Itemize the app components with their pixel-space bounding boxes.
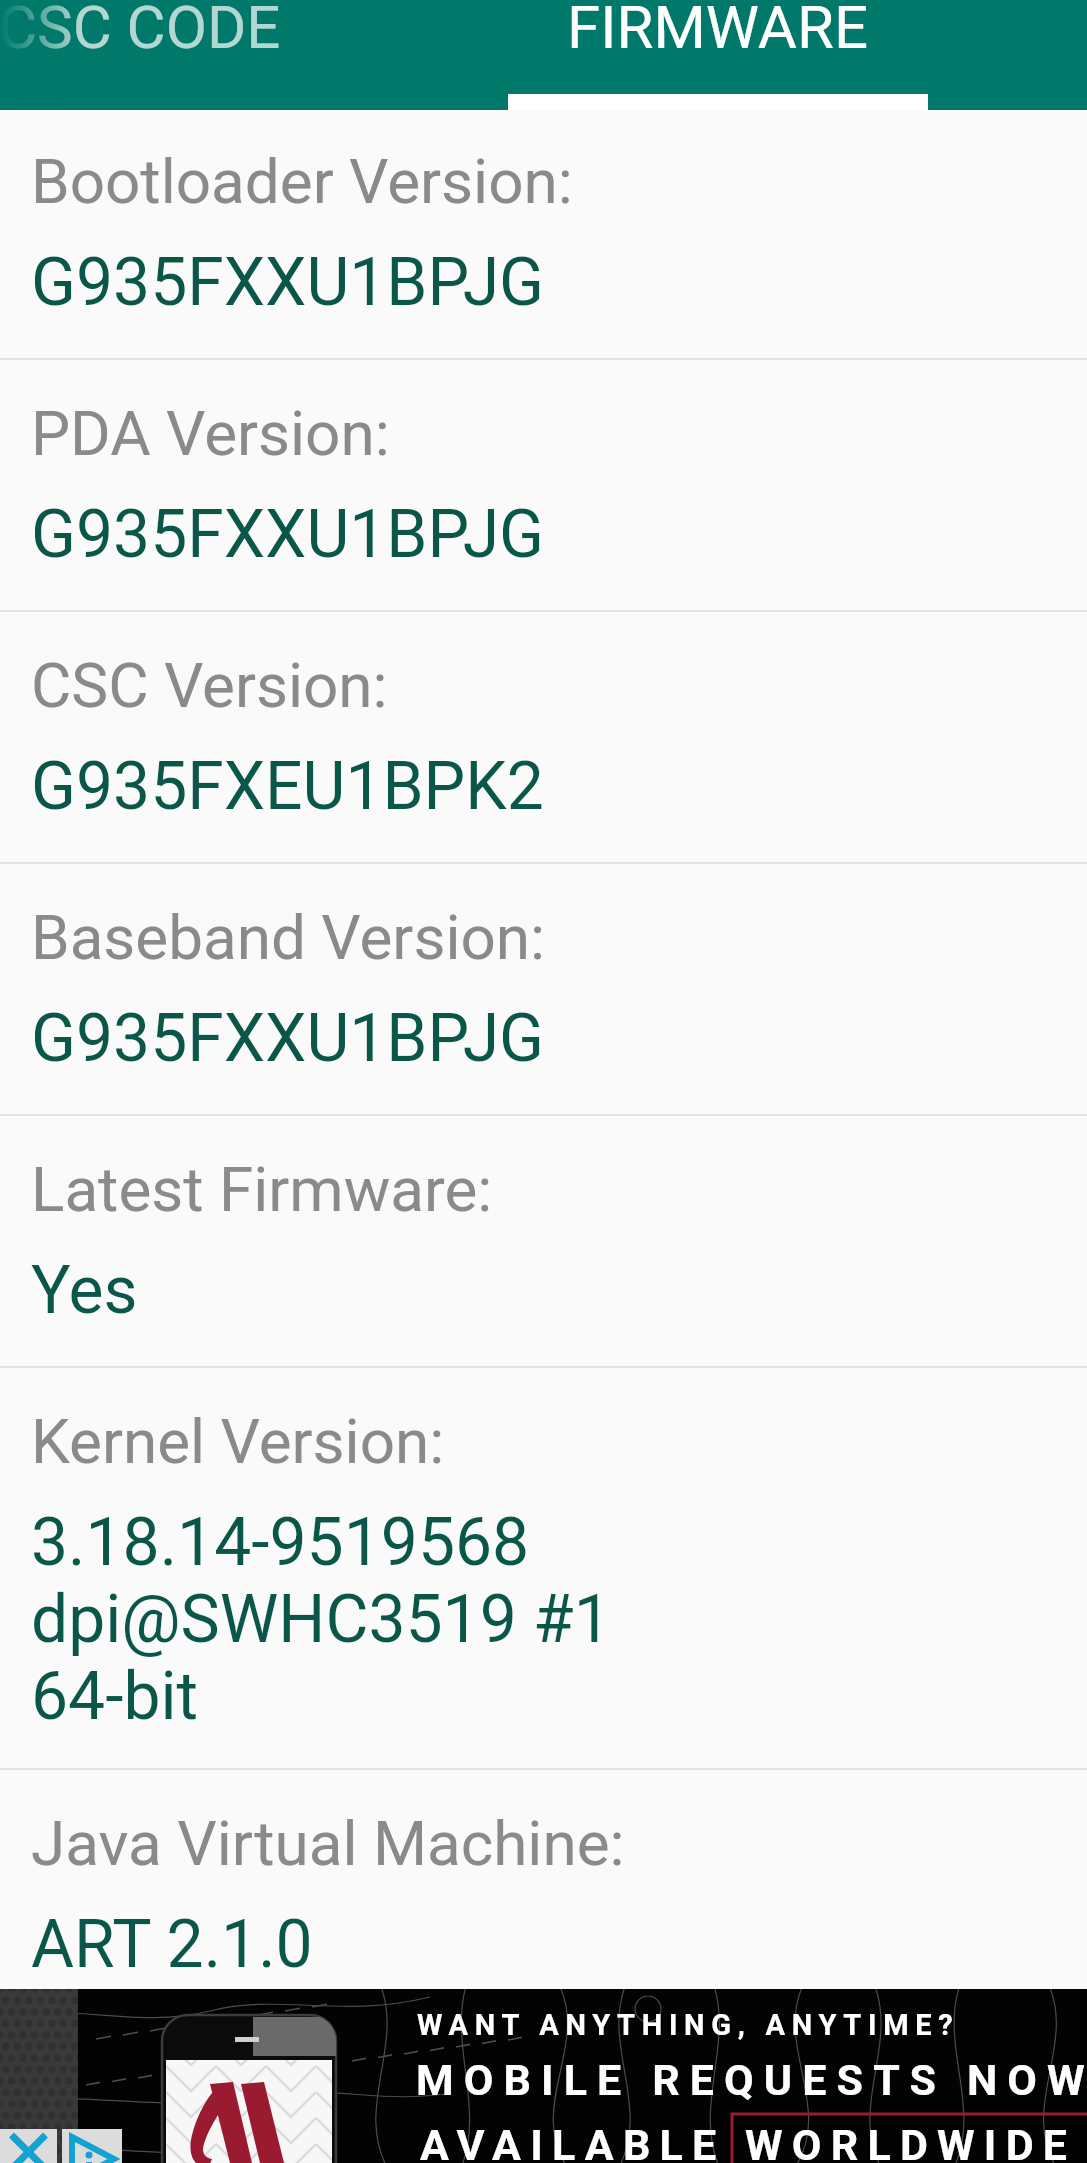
staticText: PDA Version: xyxy=(31,397,390,470)
staticText: MOBILE REQUESTS NOW xyxy=(416,2055,1087,2105)
staticText: WANT ANYTHING, ANYTIME? xyxy=(417,2008,960,2042)
staticText: Baseband Version: xyxy=(31,901,546,974)
button[interactable]: Baseband Version: xyxy=(0,864,1087,1116)
button[interactable]: Java Virtual Machine: xyxy=(0,1770,1087,2022)
button[interactable]: PDA Version: xyxy=(0,360,1087,612)
button[interactable]: Ad choices xyxy=(62,2129,122,2163)
staticText: G935FXXU1BPJG xyxy=(31,496,545,573)
button[interactable]: Latest Firmware: xyxy=(0,1116,1087,1368)
staticText: Latest Firmware: xyxy=(31,1153,493,1226)
button[interactable]: Advertisement xyxy=(0,1989,1087,2163)
button[interactable]: Kernel Version: xyxy=(0,1368,1087,1770)
staticText: WORLDWIDE xyxy=(745,2120,1077,2163)
staticText: CSC CODE xyxy=(0,0,281,62)
button[interactable]: CSC Version: xyxy=(0,612,1087,864)
button[interactable]: FIRMWARE xyxy=(508,0,928,110)
button[interactable]: Close ad xyxy=(0,2129,57,2163)
button[interactable]: CSC CODE xyxy=(0,0,508,110)
staticText: CSC Version: xyxy=(31,649,388,722)
staticText: Java Virtual Machine: xyxy=(31,1807,625,1880)
staticText: FIRMWARE xyxy=(567,0,869,62)
staticText: Kernel Version: xyxy=(31,1405,445,1478)
staticText: 3.18.14-9519568 dpi@SWHC3519 #1 64-bit xyxy=(31,1504,611,1735)
staticText: G935FXXU1BPJG xyxy=(31,244,545,321)
staticText: G935FXXU1BPJG xyxy=(31,1000,545,1077)
staticText: ART 2.1.0 xyxy=(31,1906,313,1983)
staticText: Bootloader Version: xyxy=(31,145,573,218)
staticText: Yes xyxy=(31,1252,138,1329)
button[interactable]: Bootloader Version: xyxy=(0,110,1087,360)
staticText: G935FXEU1BPK2 xyxy=(31,748,544,825)
staticText: AVAILABLE xyxy=(420,2120,726,2163)
